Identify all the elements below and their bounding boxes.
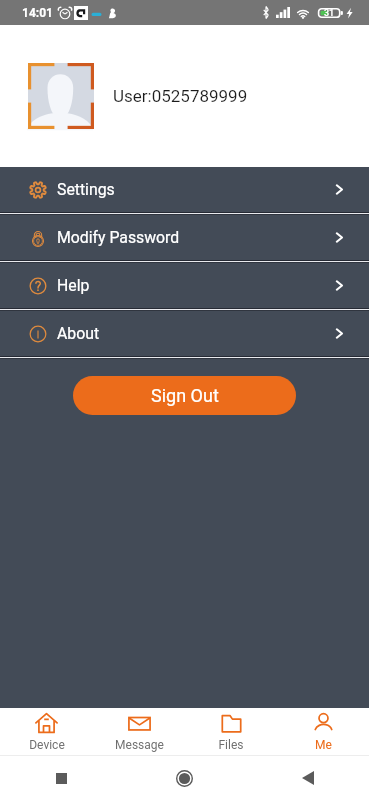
staticText: User:0525789999 [113, 86, 248, 106]
staticText: 14:01 [22, 6, 53, 20]
button[interactable]: Home [123, 756, 246, 800]
staticText: Settings [57, 180, 115, 199]
button[interactable]: Message [93, 708, 185, 755]
button[interactable]: Settings [0, 167, 369, 212]
staticText: About [57, 324, 100, 343]
staticText: Message [115, 738, 164, 752]
button[interactable]: Device [0, 708, 93, 755]
staticText: Me [315, 738, 332, 752]
staticText: Sign Out [151, 385, 219, 406]
button[interactable]: About [0, 311, 369, 356]
button[interactable]: Sign Out [73, 376, 296, 415]
button[interactable]: Me [277, 708, 369, 755]
button[interactable]: Files [185, 708, 277, 755]
staticText: Files [218, 738, 244, 752]
staticText: Device [29, 738, 65, 752]
button[interactable]: Modify Password [0, 215, 369, 260]
button[interactable]: Back [246, 756, 369, 800]
staticText: Help [57, 276, 90, 295]
button[interactable]: Help [0, 263, 369, 308]
staticText: 31 [324, 8, 335, 19]
staticText: Modify Password [57, 228, 180, 247]
button[interactable]: Recent apps [0, 756, 123, 800]
